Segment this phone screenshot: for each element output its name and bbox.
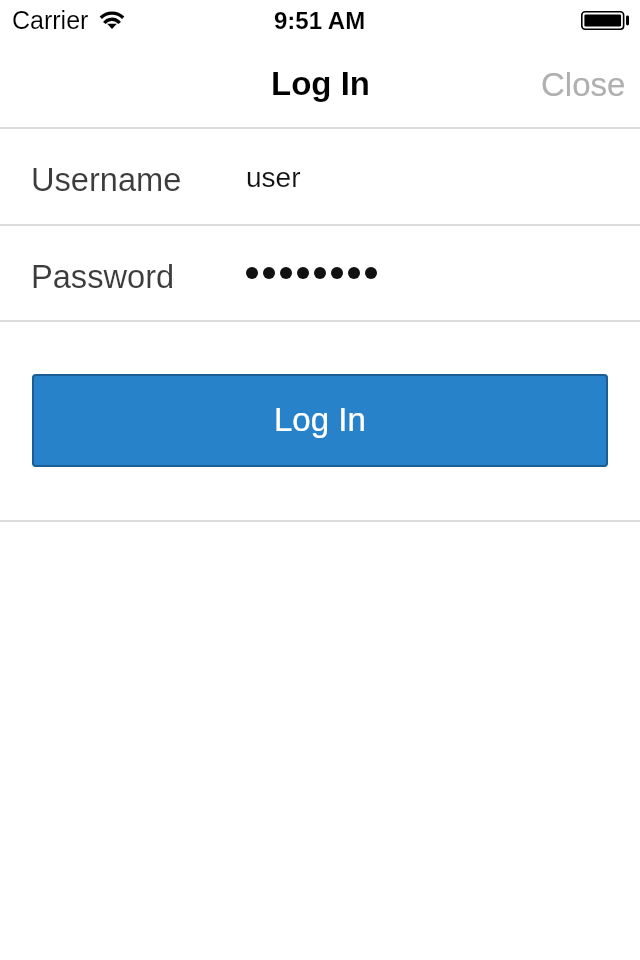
- staticText: 9:51 AM: [274, 7, 366, 34]
- button[interactable]: Username: [0, 129, 640, 224]
- staticText: Username: [31, 161, 182, 197]
- other: Wi-Fi signal: [100, 11, 124, 29]
- button[interactable]: Password: [0, 226, 640, 321]
- button[interactable]: Log In: [32, 374, 608, 467]
- staticText: Log In: [271, 65, 370, 102]
- staticText: Close: [541, 66, 626, 103]
- button[interactable]: Close: [517, 55, 640, 112]
- staticText: Password: [31, 258, 175, 294]
- other: Battery full: [581, 11, 629, 30]
- staticText: Log In: [274, 401, 366, 438]
- staticText: user: [246, 162, 301, 193]
- staticText: Carrier: [12, 6, 89, 34]
